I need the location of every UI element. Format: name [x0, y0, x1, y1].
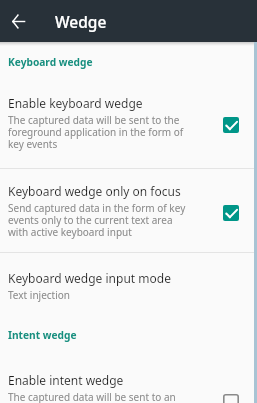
button[interactable]: Enable keyboard wedge [223, 117, 239, 133]
button[interactable]: Keyboard wedge only on focus [0, 169, 257, 252]
staticText: Wedge [55, 11, 107, 32]
button[interactable]: Navigate up [5, 8, 31, 34]
staticText: The captured data will be sent to an [8, 390, 176, 403]
staticText: Keyboard wedge [8, 55, 93, 69]
button[interactable]: Enable intent wedge [0, 372, 257, 403]
staticText: The captured data will be sent to the fo… [8, 113, 187, 151]
staticText: Keyboard wedge input mode [8, 270, 171, 286]
staticText: Text injection [8, 288, 70, 302]
staticText: Keyboard wedge only on focus [8, 183, 181, 199]
staticText: Intent wedge [8, 328, 77, 342]
staticText: Send captured data in the form of key ev… [8, 201, 187, 239]
button[interactable]: Keyboard wedge input mode [0, 253, 257, 308]
button[interactable]: Enable intent wedge [223, 394, 239, 403]
button[interactable]: Keyboard wedge only on focus [223, 205, 239, 221]
button[interactable]: Enable keyboard wedge [0, 95, 257, 168]
staticText: Enable intent wedge [8, 372, 124, 388]
staticText: Enable keyboard wedge [8, 95, 143, 111]
